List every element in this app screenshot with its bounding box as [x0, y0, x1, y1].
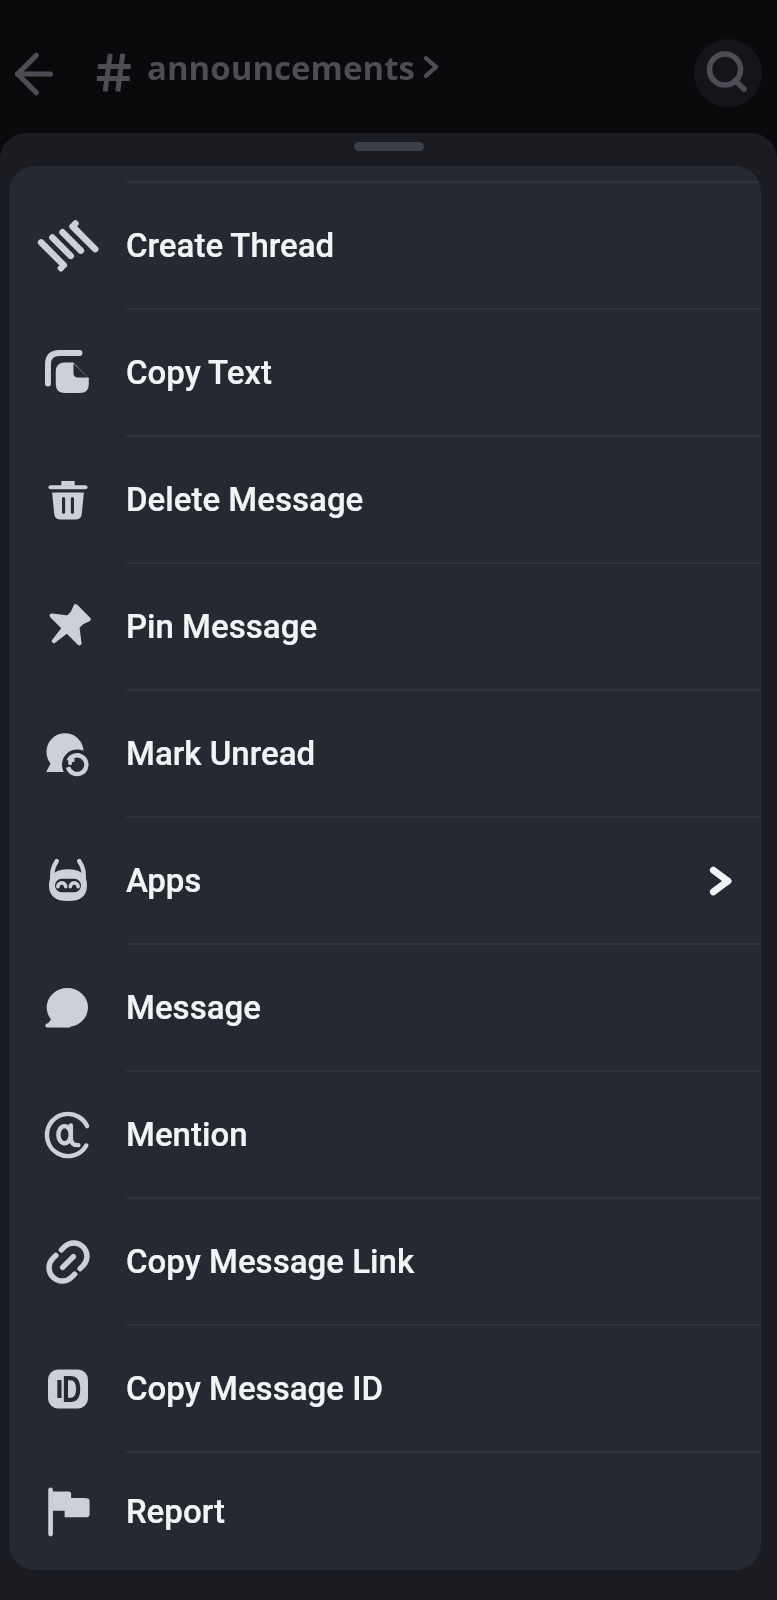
button[interactable]: Apps — [9, 818, 761, 943]
staticText: announcements — [147, 45, 415, 90]
staticText: Copy Text — [126, 353, 272, 392]
button[interactable]: Pin Message — [9, 564, 761, 689]
button[interactable]: Copy Text — [9, 310, 761, 435]
staticText: Copy Message ID — [126, 1369, 384, 1408]
button[interactable]: Mention — [9, 1072, 761, 1197]
button[interactable]: Mark Unread — [9, 691, 761, 816]
button[interactable]: Back — [0, 40, 68, 108]
staticText: Mention — [126, 1115, 248, 1154]
button[interactable]: Create Thread — [9, 183, 761, 308]
staticText: Apps — [126, 861, 202, 900]
staticText: Mark Unread — [126, 734, 316, 773]
button[interactable]: Message — [9, 945, 761, 1070]
staticText: Pin Message — [126, 607, 318, 646]
staticText: Copy Message Link — [126, 1242, 415, 1281]
staticText: Message — [126, 988, 261, 1027]
staticText: Report — [126, 1492, 226, 1531]
staticText: Create Thread — [126, 226, 335, 265]
button[interactable]: announcements — [94, 43, 440, 91]
button[interactable]: Delete Message — [9, 437, 761, 562]
button[interactable]: Copy Message ID — [9, 1326, 761, 1451]
staticText: Delete Message — [126, 480, 364, 519]
button[interactable]: Report — [9, 1453, 761, 1570]
button[interactable]: Copy Message Link — [9, 1199, 761, 1324]
button[interactable]: Search — [694, 39, 762, 107]
